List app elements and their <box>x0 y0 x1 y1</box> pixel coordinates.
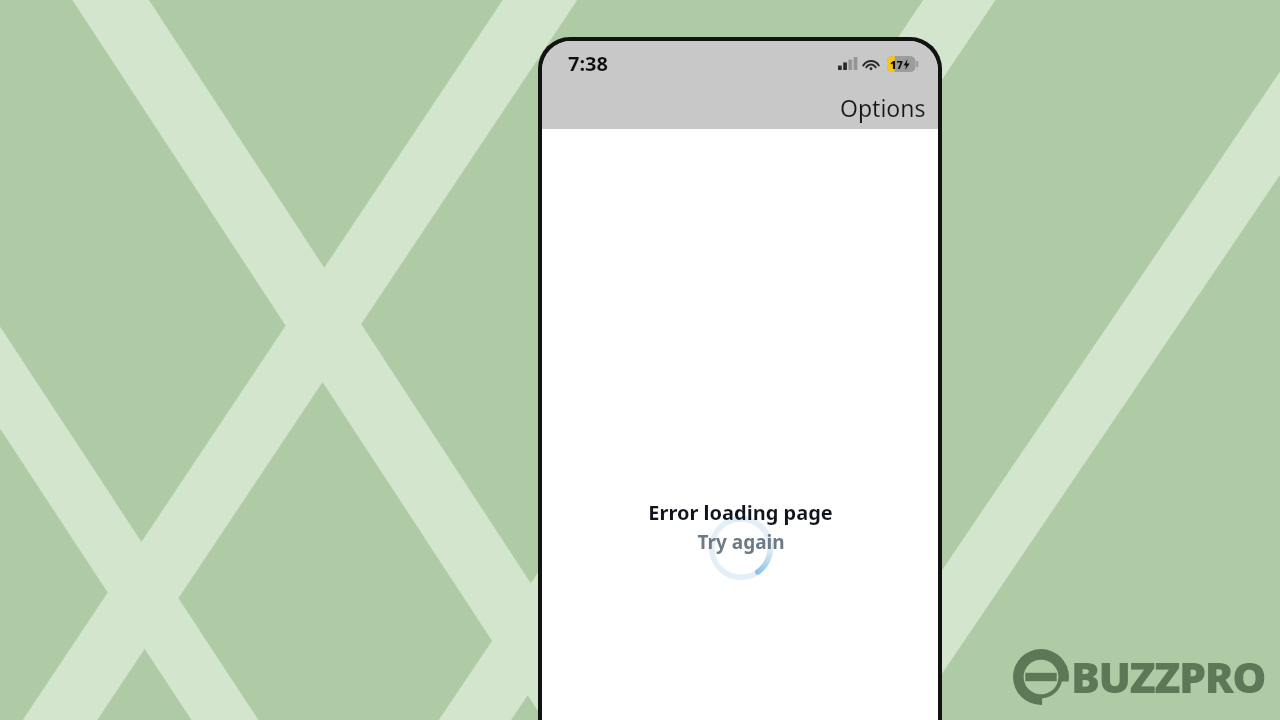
staticText: 7:38 <box>568 50 608 77</box>
button[interactable]: Try again <box>697 529 785 555</box>
staticText: Options <box>840 92 926 123</box>
button[interactable]: Error loading page <box>648 499 833 526</box>
staticText: 17 <box>890 57 903 72</box>
staticText: Error loading page <box>648 499 833 526</box>
staticText: Try again <box>697 529 785 555</box>
button[interactable]: Options <box>840 92 938 129</box>
staticText: BUZZPRO <box>1071 647 1266 706</box>
